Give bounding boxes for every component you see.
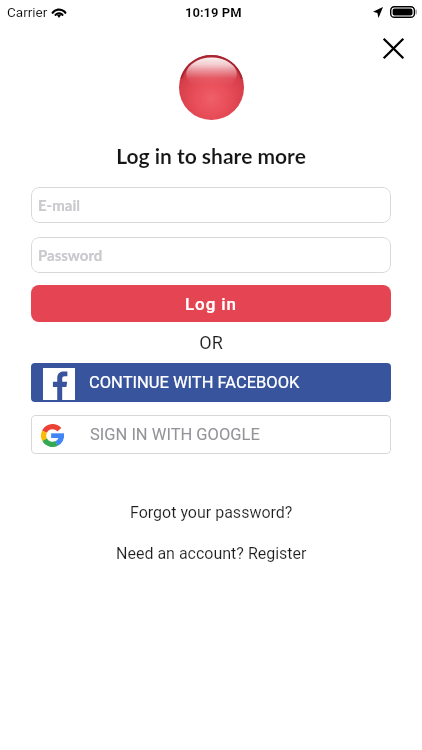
button[interactable]: CONTINUE WITH FACEBOOK <box>31 363 391 402</box>
button[interactable]: E-mail <box>31 187 391 223</box>
staticText: Carrier <box>7 4 48 20</box>
button[interactable]: Close <box>378 33 409 64</box>
staticText: SIGN IN WITH GOOGLE <box>90 425 260 444</box>
button[interactable]: Password <box>31 237 391 273</box>
staticText: Log in to share more <box>0 143 422 168</box>
staticText: Password <box>38 246 103 264</box>
staticText: 10:19 PM <box>185 5 242 20</box>
staticText: Log in <box>185 294 237 314</box>
staticText: CONTINUE WITH FACEBOOK <box>89 373 300 392</box>
staticText: Need an account? Register <box>116 544 307 563</box>
button[interactable]: Need an account? Register <box>0 542 422 564</box>
button[interactable]: SIGN IN WITH GOOGLE <box>31 415 391 454</box>
staticText: OR <box>0 332 422 353</box>
button[interactable]: Forgot your password? <box>0 501 422 523</box>
staticText: E-mail <box>38 196 80 214</box>
staticText: Forgot your password? <box>130 503 293 522</box>
button[interactable]: Log in <box>31 285 391 322</box>
